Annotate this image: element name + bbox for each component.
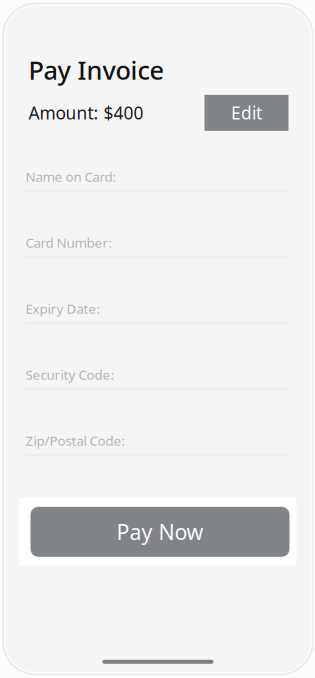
button[interactable]: Edit xyxy=(204,95,288,131)
button[interactable]: Zip/Postal Code: xyxy=(25,432,289,498)
staticText: Name on Card: xyxy=(25,168,116,185)
staticText: Amount: $400 xyxy=(28,101,143,124)
button[interactable]: Security Code: xyxy=(25,366,289,432)
button[interactable]: Name on Card: xyxy=(25,168,289,234)
staticText: Pay Now xyxy=(116,518,203,546)
staticText: Zip/Postal Code: xyxy=(25,432,125,449)
button[interactable]: Card Number: xyxy=(25,234,289,300)
staticText: Security Code: xyxy=(25,366,114,383)
button[interactable]: Pay Now xyxy=(19,498,296,566)
button[interactable]: Expiry Date: xyxy=(25,300,289,366)
staticText: Edit xyxy=(231,101,262,124)
staticText: Pay Invoice xyxy=(28,53,164,87)
staticText: Expiry Date: xyxy=(25,300,100,317)
staticText: Card Number: xyxy=(25,234,112,251)
